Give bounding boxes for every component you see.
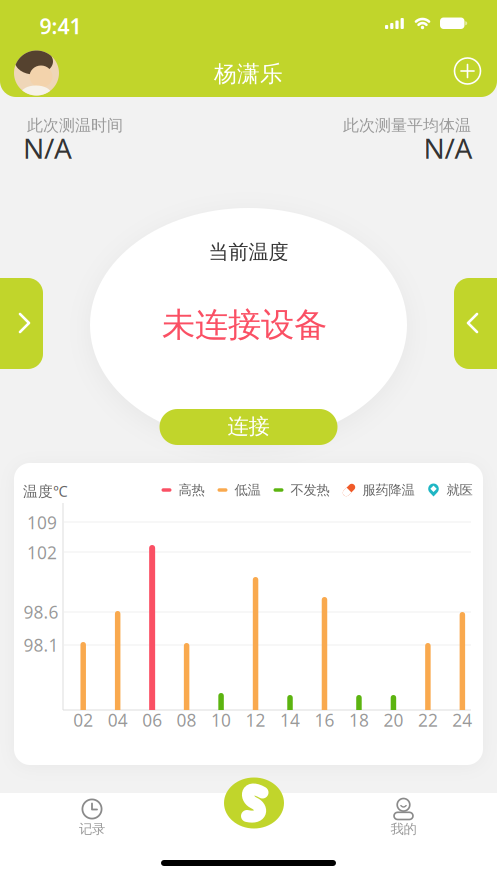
staticText: 高热 bbox=[178, 482, 204, 498]
staticText: 我的 bbox=[390, 821, 416, 837]
staticText: N/A bbox=[23, 129, 72, 167]
staticText: 记录 bbox=[79, 821, 105, 837]
staticText: 98.1 bbox=[23, 633, 58, 656]
staticText: 20 bbox=[383, 708, 403, 731]
staticText: 未连接设备 bbox=[162, 304, 327, 345]
staticText: N/A bbox=[423, 129, 472, 167]
staticText: 18 bbox=[349, 708, 369, 731]
staticText: 低温 bbox=[234, 482, 260, 498]
staticText: 此次测量平均体温 bbox=[343, 116, 471, 135]
staticText: 温度℃ bbox=[23, 481, 68, 501]
staticText: 连接 bbox=[227, 413, 269, 440]
staticText: 06 bbox=[142, 708, 162, 731]
staticText: 109 bbox=[27, 511, 57, 534]
staticText: 16 bbox=[314, 708, 334, 731]
staticText: 服药降温 bbox=[362, 482, 414, 498]
staticText: 就医 bbox=[446, 482, 472, 498]
staticText: 02 bbox=[73, 708, 93, 731]
staticText: 22 bbox=[418, 708, 438, 731]
staticText: 9:41 bbox=[39, 12, 81, 40]
staticText: 不发热 bbox=[290, 482, 329, 498]
staticText: 10 bbox=[211, 708, 231, 731]
staticText: 98.6 bbox=[23, 600, 58, 623]
staticText: 102 bbox=[27, 541, 57, 564]
staticText: 当前温度 bbox=[208, 240, 288, 264]
staticText: 12 bbox=[246, 708, 266, 731]
staticText: 08 bbox=[177, 708, 197, 731]
staticText: 杨潇乐 bbox=[214, 60, 283, 88]
staticText: 04 bbox=[108, 708, 128, 731]
staticText: 24 bbox=[452, 708, 472, 731]
staticText: 此次测温时间 bbox=[27, 116, 123, 135]
staticText: 14 bbox=[280, 708, 300, 731]
